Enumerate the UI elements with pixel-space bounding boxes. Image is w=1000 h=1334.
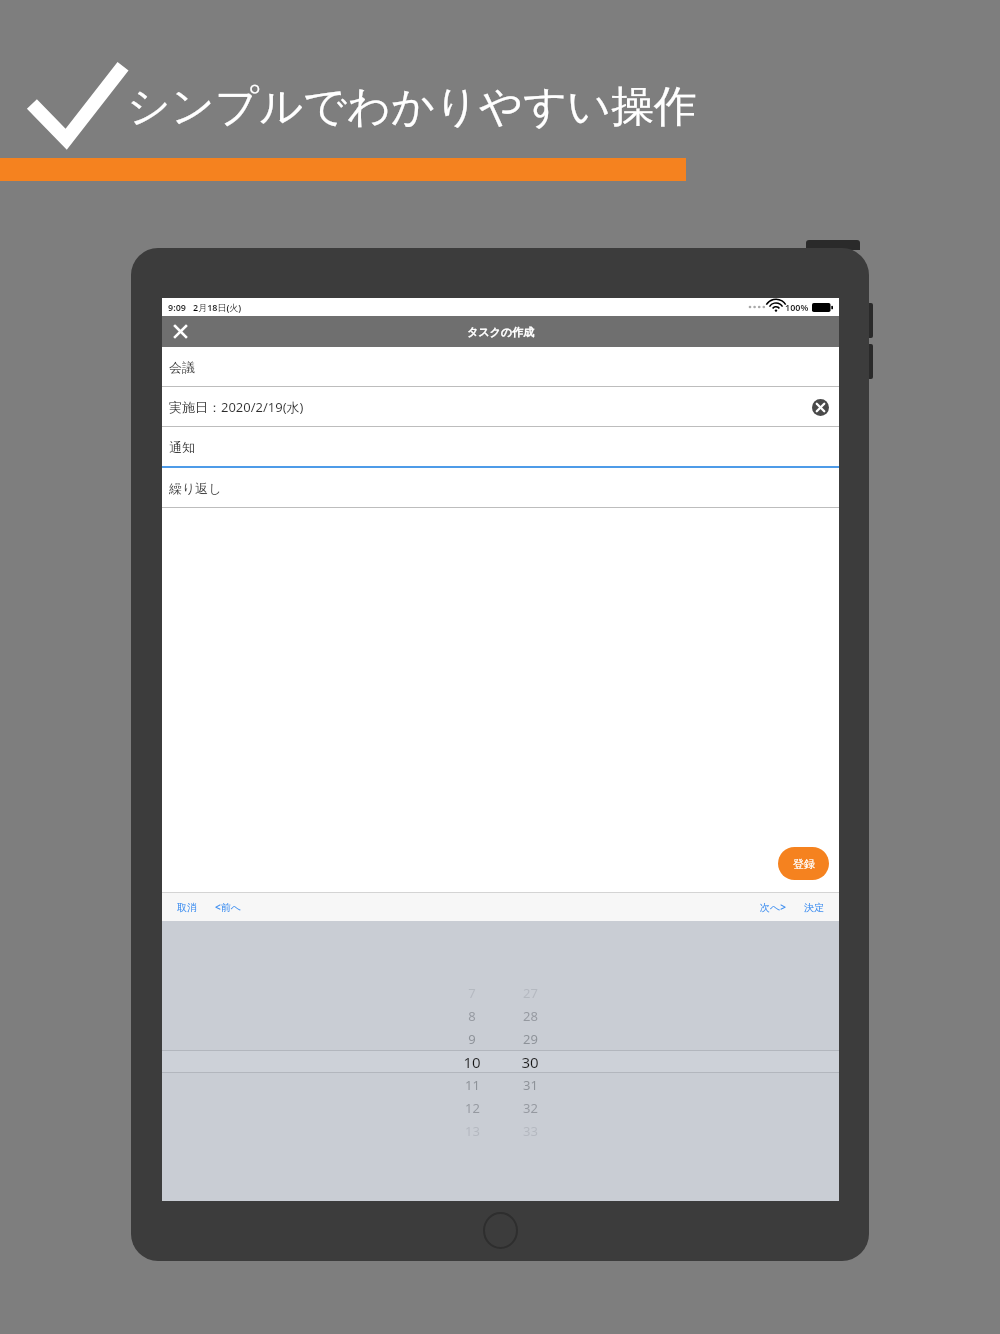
button[interactable]: <前へ: [212, 895, 244, 919]
staticText: 7: [468, 984, 476, 1002]
button[interactable]: 会議: [162, 347, 839, 387]
button[interactable]: 繰り返し: [162, 468, 839, 508]
staticText: 決定: [804, 901, 824, 914]
staticText: 27: [523, 984, 538, 1002]
staticText: 8: [468, 1007, 476, 1025]
staticText: 33: [523, 1122, 538, 1140]
staticText: 32: [523, 1099, 538, 1117]
staticText: シンプルでわかりやすい操作: [127, 80, 698, 134]
staticText: 12: [465, 1099, 480, 1117]
staticText: 通知: [169, 439, 195, 455]
staticText: <前へ: [215, 900, 241, 914]
staticText: 実施日：2020/2/19(水): [169, 398, 304, 416]
staticText: 10: [463, 1052, 481, 1072]
staticText: タスクの作成: [467, 325, 535, 339]
button[interactable]: 次へ>: [757, 895, 789, 919]
staticText: 繰り返し: [169, 480, 222, 496]
button[interactable]: 登録: [778, 847, 829, 880]
staticText: 次へ>: [760, 900, 786, 914]
staticText: 9: [468, 1030, 476, 1048]
staticText: 9:09: [168, 301, 186, 313]
button[interactable]: Close: [162, 316, 198, 347]
staticText: 100%: [785, 301, 809, 313]
button[interactable]: 決定: [801, 896, 827, 919]
button[interactable]: Clear date: [808, 395, 832, 419]
staticText: 取消: [177, 901, 197, 914]
staticText: 2月18日(火): [193, 301, 242, 313]
staticText: 13: [465, 1122, 480, 1140]
staticText: 29: [523, 1030, 538, 1048]
staticText: 登録: [793, 857, 815, 871]
staticText: 31: [523, 1076, 538, 1094]
button[interactable]: 実施日：2020/2/19(水): [162, 387, 839, 427]
staticText: 30: [521, 1052, 539, 1072]
button[interactable]: 取消: [174, 896, 200, 919]
staticText: 会議: [169, 359, 195, 375]
staticText: 11: [465, 1076, 480, 1094]
staticText: 28: [523, 1007, 538, 1025]
button[interactable]: 通知: [162, 427, 839, 468]
